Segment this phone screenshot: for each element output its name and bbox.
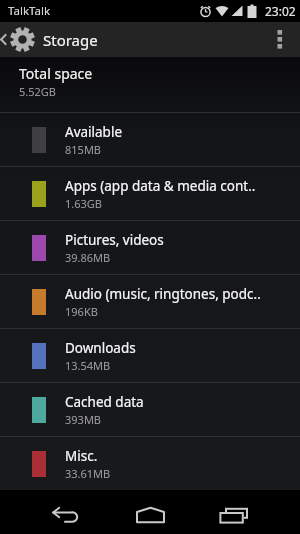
button[interactable]: Misc.	[0, 436, 300, 490]
staticText: Apps (app data & media cont..	[65, 177, 256, 195]
staticText: Misc.	[65, 447, 98, 465]
button[interactable]	[0, 22, 40, 57]
staticText: TalkTalk	[8, 3, 51, 19]
staticText: 5.52GB	[19, 84, 56, 99]
button[interactable]: Cached data	[0, 382, 300, 436]
button[interactable]: Downloads	[0, 328, 300, 382]
staticText: 39.86MB	[65, 250, 111, 265]
staticText: Available	[65, 123, 122, 141]
staticText: 393MB	[65, 412, 102, 427]
button[interactable]: Available	[0, 112, 300, 166]
staticText: 23:02	[265, 3, 296, 19]
button[interactable]	[260, 22, 300, 57]
button[interactable]: Pictures, videos	[0, 220, 300, 274]
staticText: 1.63GB	[65, 196, 102, 211]
staticText: Cached data	[65, 393, 144, 411]
staticText: Storage	[43, 30, 98, 50]
staticText: Downloads	[65, 339, 136, 357]
staticText: 13.54MB	[65, 358, 111, 373]
staticText: 33.61MB	[65, 466, 111, 481]
staticText: Total space	[19, 64, 93, 83]
button[interactable]: Audio (music, ringtones, podc..	[0, 274, 300, 328]
button[interactable]	[196, 490, 270, 534]
staticText: Pictures, videos	[65, 231, 164, 249]
button[interactable]	[28, 490, 102, 534]
staticText: 815MB	[65, 142, 102, 157]
staticText: Audio (music, ringtones, podc..	[65, 285, 261, 303]
button[interactable]: Apps (app data & media cont..	[0, 166, 300, 220]
button[interactable]	[113, 490, 187, 534]
staticText: 196KB	[65, 304, 98, 319]
